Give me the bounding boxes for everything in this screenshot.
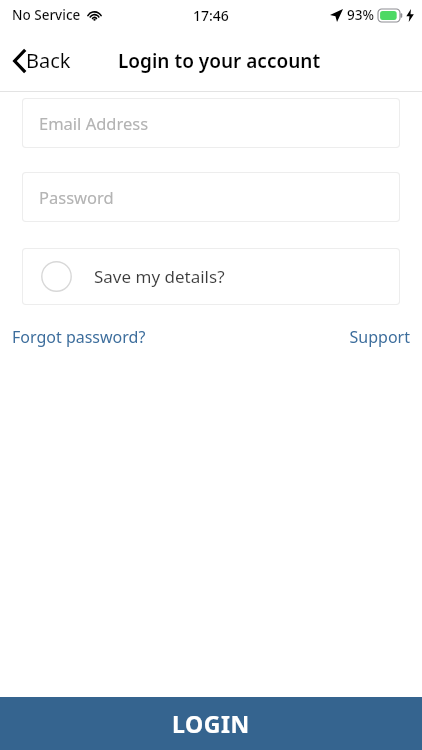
button[interactable]: Save my details? bbox=[23, 249, 399, 304]
staticText: Password bbox=[39, 186, 114, 208]
staticText: LOGIN bbox=[172, 708, 250, 739]
button[interactable]: Password bbox=[23, 173, 399, 221]
button[interactable]: Back bbox=[0, 39, 85, 82]
button[interactable]: Support bbox=[341, 320, 418, 354]
staticText: Save my details? bbox=[94, 265, 225, 288]
staticText: Login to your account bbox=[118, 48, 321, 74]
staticText: Back bbox=[26, 47, 71, 74]
button[interactable]: LOGIN bbox=[0, 697, 422, 750]
button[interactable]: Email Address bbox=[23, 99, 399, 147]
staticText: 17:46 bbox=[193, 6, 229, 25]
button[interactable]: Forgot password? bbox=[4, 320, 154, 354]
staticText: No Service bbox=[12, 6, 81, 24]
staticText: Support bbox=[349, 326, 410, 348]
staticText: Forgot password? bbox=[12, 326, 146, 348]
staticText: Email Address bbox=[39, 112, 149, 134]
staticText: 93% bbox=[347, 6, 374, 24]
